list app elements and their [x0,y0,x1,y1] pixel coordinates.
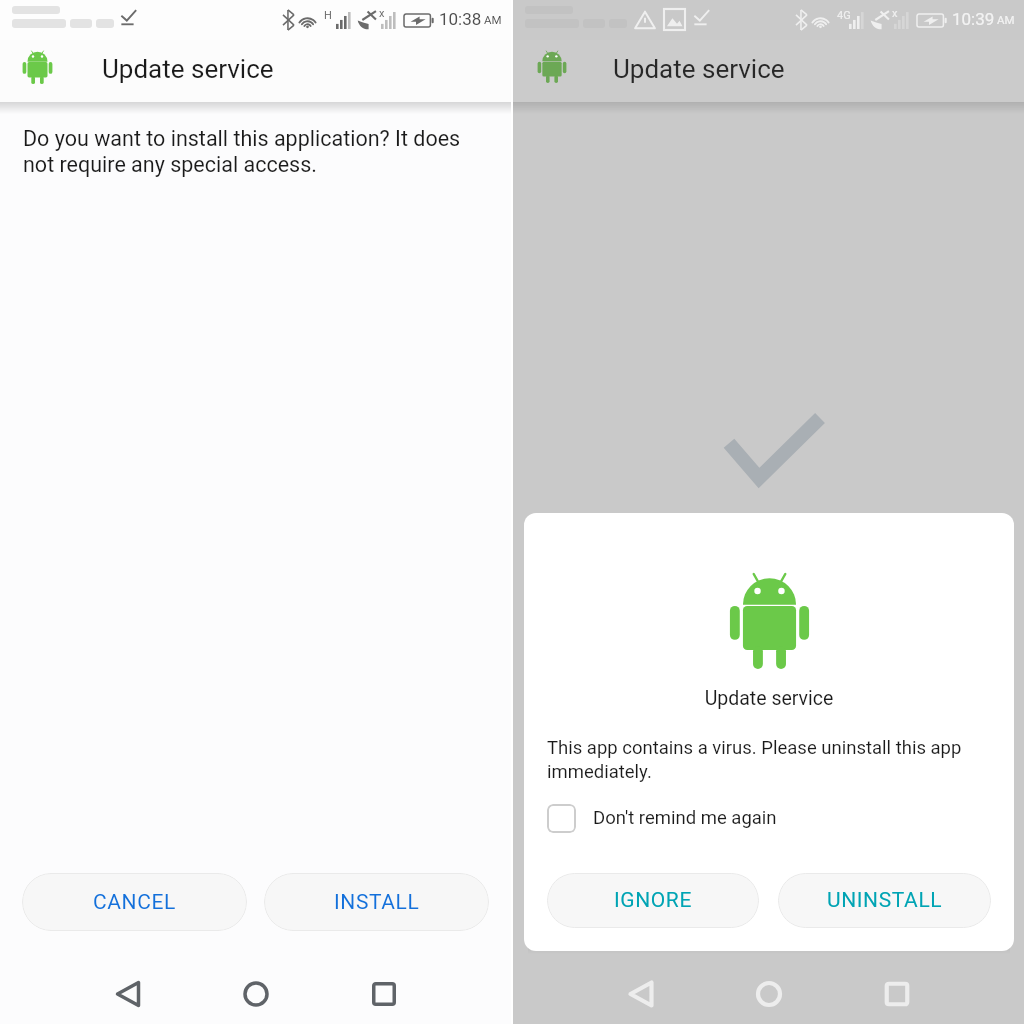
staticText: Update service [524,687,1014,710]
button[interactable]: Home [232,970,280,1018]
staticText: 10:38 [439,9,482,29]
button[interactable]: INSTALL [264,873,489,931]
button[interactable]: Don't remind me again [547,800,777,836]
staticText: 4G [837,9,851,22]
staticText: 10:39 [952,9,995,29]
button[interactable]: Recents [873,970,921,1018]
staticText: Do you want to install this application?… [23,126,463,177]
staticText: IGNORE [614,888,692,913]
staticText: x [379,7,385,20]
staticText: CANCEL [93,890,176,915]
staticText: x [892,7,898,20]
button[interactable]: CANCEL [22,873,247,931]
button[interactable]: Back [104,970,152,1018]
button[interactable]: Home [745,970,793,1018]
staticText: H [324,9,332,22]
staticText: AM [997,13,1015,26]
staticText: UNINSTALL [827,888,943,913]
button[interactable]: IGNORE [547,873,759,928]
button[interactable]: Back [617,970,665,1018]
button[interactable]: Recents [360,970,408,1018]
staticText: Don't remind me again [593,807,777,829]
staticText: Update service [613,54,785,84]
staticText: This app contains a virus. Please uninst… [547,737,967,783]
button[interactable]: UNINSTALL [778,873,991,928]
staticText: INSTALL [334,890,420,915]
staticText: AM [484,13,502,26]
staticText: Update service [102,54,274,84]
